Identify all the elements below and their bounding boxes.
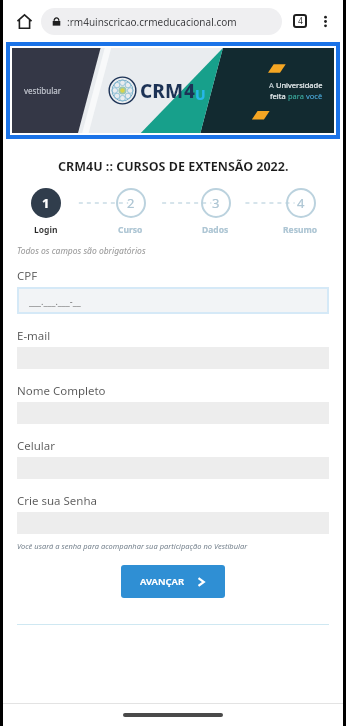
staticText: 4: [298, 15, 303, 27]
staticText: 2: [127, 194, 135, 212]
staticText: 4: [297, 194, 305, 212]
button[interactable]: More options: [313, 9, 337, 33]
staticText: CPF: [17, 268, 38, 284]
staticText: você: [306, 91, 323, 101]
staticText: A: [269, 80, 276, 90]
button[interactable]: 2: [88, 188, 173, 236]
button[interactable]: Home: [9, 6, 39, 36]
button[interactable]: :rm4uinscricao.crmeducacional.com: [41, 8, 282, 35]
staticText: CRM: [140, 78, 184, 104]
button[interactable]: AVANÇAR: [121, 565, 225, 598]
staticText: Dados: [202, 224, 229, 236]
staticText: Login: [34, 224, 58, 236]
staticText: :rm4uinscricao.crmeducacional.com: [67, 15, 237, 29]
staticText: Você usará a senha para acompanhar sua p…: [17, 541, 248, 551]
staticText: Nome Completo: [17, 383, 106, 399]
staticText: feita: [270, 91, 288, 101]
button[interactable]: ___.___.___-__: [19, 289, 327, 312]
staticText: para: [288, 91, 306, 101]
staticText: AVANÇAR: [140, 575, 185, 588]
button[interactable]: Tabs, 4 open: [287, 8, 313, 34]
staticText: Curso: [118, 224, 143, 236]
staticText: ___.___.___-__: [29, 295, 81, 307]
staticText: Crie sua Senha: [17, 493, 97, 509]
staticText: vestibular: [24, 85, 62, 96]
staticText: 4: [184, 78, 195, 104]
staticText: Todos os campos são obrigatórios: [17, 245, 146, 257]
staticText: CRM4U :: CURSOS DE EXTENSÃO 2022.: [58, 158, 289, 175]
staticText: 1: [42, 194, 50, 212]
button[interactable]: CRM4U vestibular banner: [12, 48, 334, 133]
staticText: Resumo: [283, 224, 318, 236]
staticText: Celular: [17, 438, 55, 454]
button[interactable]: 1: [3, 188, 88, 236]
button[interactable]: 3: [173, 188, 258, 236]
button[interactable]: 4: [258, 188, 343, 236]
staticText: Universidade: [276, 80, 323, 90]
staticText: 3: [212, 194, 220, 212]
staticText: U: [195, 85, 206, 104]
staticText: E-mail: [17, 328, 51, 344]
